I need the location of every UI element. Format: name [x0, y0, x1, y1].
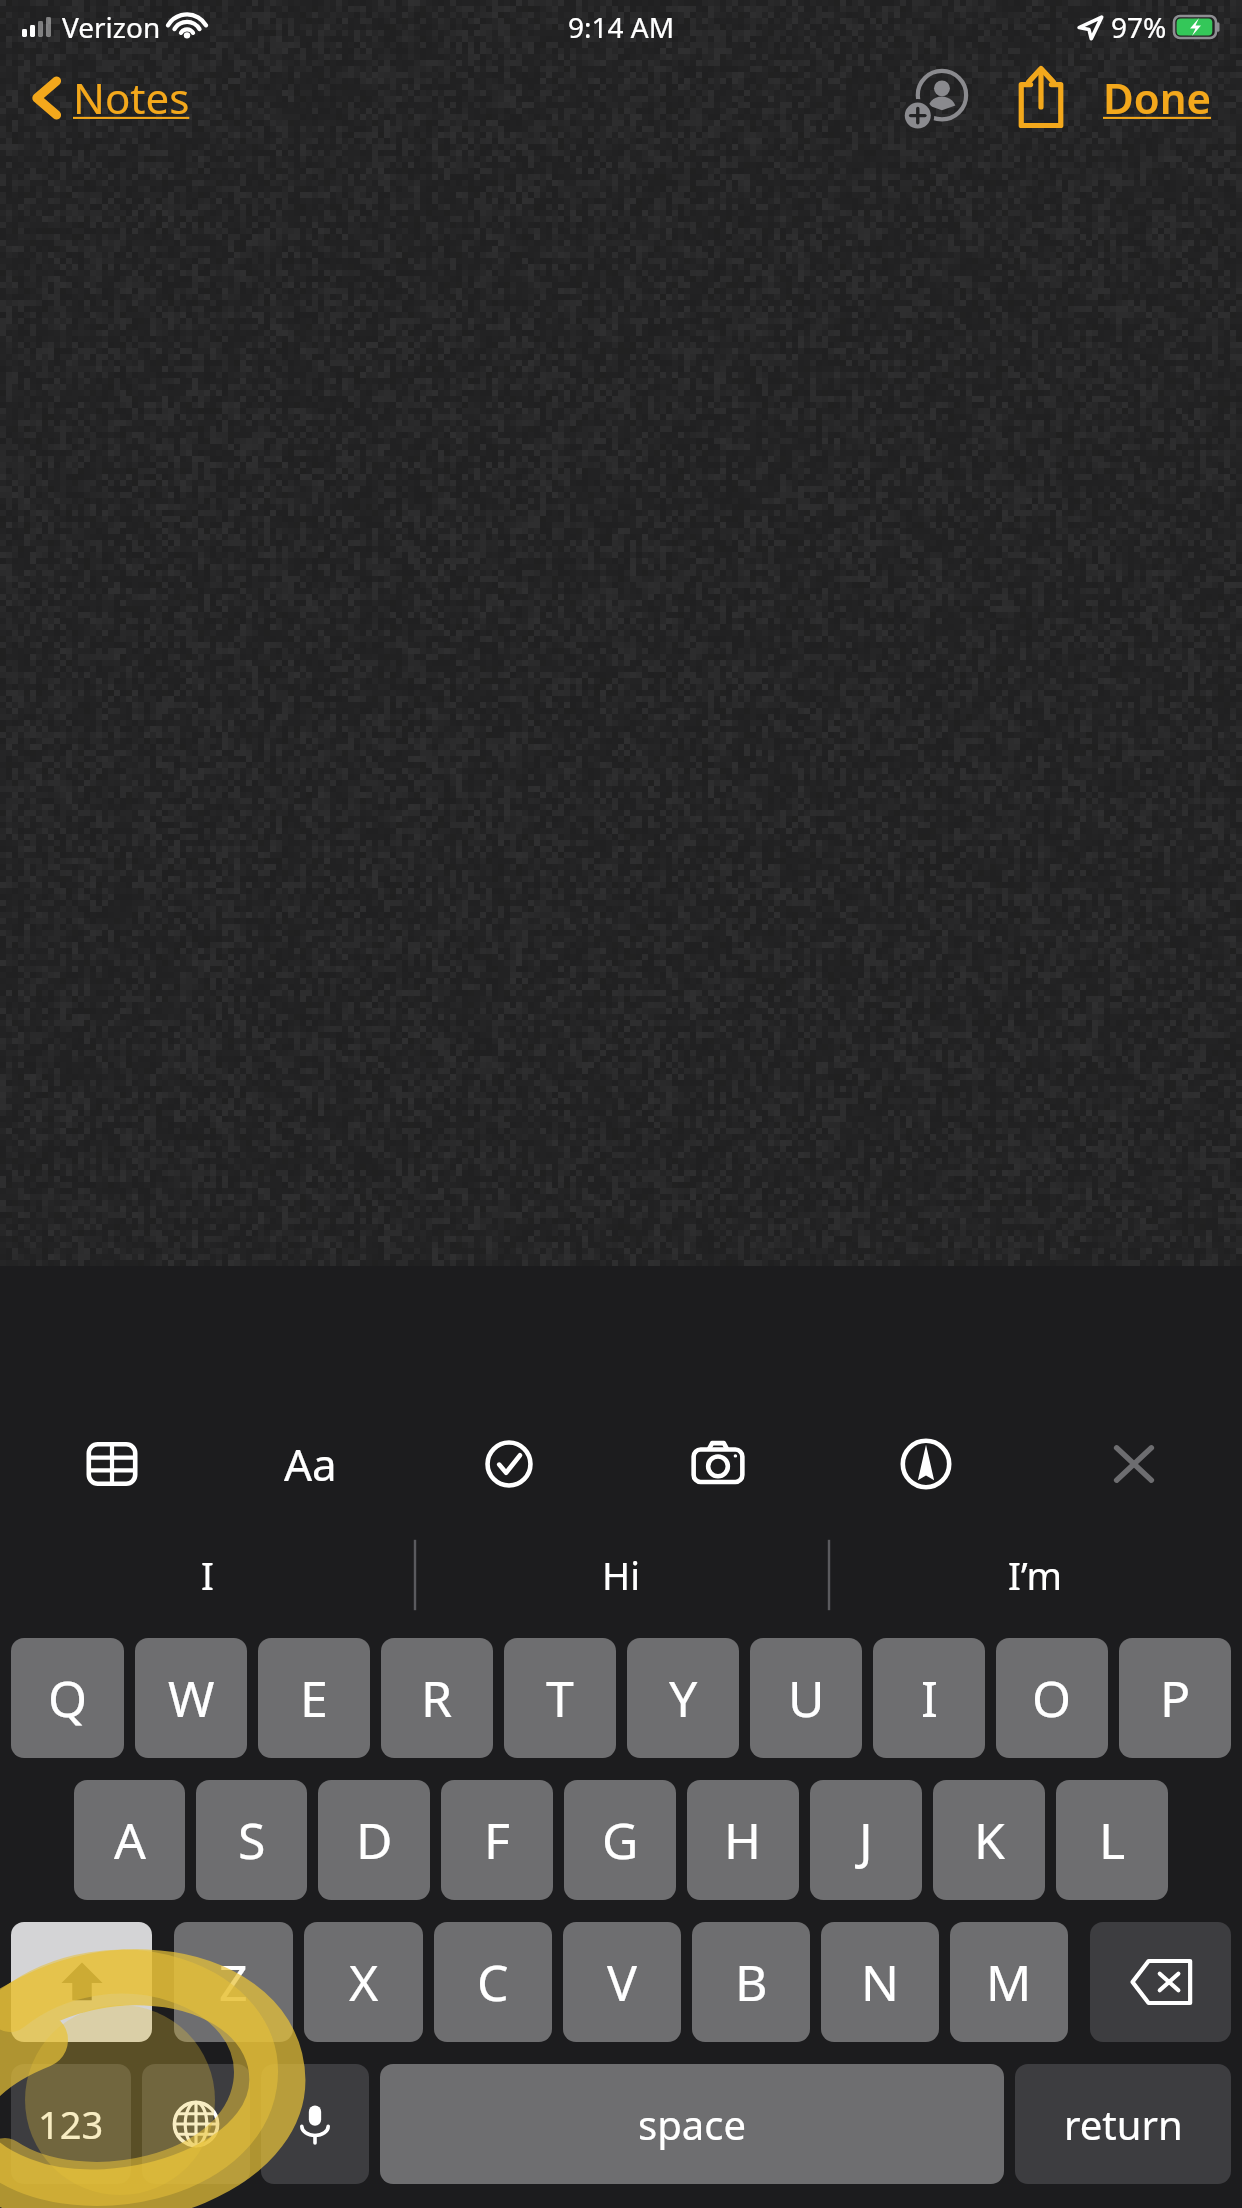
button[interactable]: H: [687, 1780, 799, 1900]
staticText: I’m: [1008, 1549, 1062, 1601]
staticText: C: [477, 1948, 509, 2016]
staticText: D: [356, 1806, 393, 1874]
staticText: B: [735, 1948, 768, 2016]
button[interactable]: K: [933, 1780, 1045, 1900]
button[interactable]: W: [135, 1638, 247, 1758]
button[interactable]: Switch Language: [142, 2064, 250, 2184]
staticText: Q: [48, 1664, 88, 1732]
staticText: W: [168, 1664, 215, 1732]
staticText: E: [300, 1664, 328, 1732]
button[interactable]: S: [196, 1780, 307, 1900]
button[interactable]: P: [1119, 1638, 1231, 1758]
button[interactable]: Close Keyboard: [1088, 1418, 1180, 1510]
button[interactable]: F: [441, 1780, 553, 1900]
staticText: Verizon: [62, 8, 161, 46]
button[interactable]: X: [304, 1922, 423, 2042]
button[interactable]: G: [564, 1780, 676, 1900]
button[interactable]: Y: [627, 1638, 739, 1758]
button[interactable]: Shift: [11, 1922, 152, 2042]
button[interactable]: return: [1015, 2064, 1231, 2184]
button[interactable]: N: [821, 1922, 939, 2042]
staticText: X: [349, 1948, 379, 2016]
staticText: G: [602, 1806, 639, 1874]
button[interactable]: L: [1056, 1780, 1168, 1900]
button[interactable]: M: [950, 1922, 1068, 2042]
staticText: A: [114, 1806, 146, 1874]
staticText: Y: [669, 1664, 698, 1732]
button[interactable]: A: [74, 1780, 185, 1900]
button[interactable]: O: [996, 1638, 1108, 1758]
button[interactable]: C: [434, 1922, 552, 2042]
button[interactable]: D: [318, 1780, 430, 1900]
staticText: M: [986, 1948, 1032, 2016]
button[interactable]: Z: [174, 1922, 293, 2042]
button[interactable]: Add People: [889, 54, 985, 140]
staticText: T: [546, 1664, 574, 1732]
staticText: V: [607, 1948, 637, 2016]
button[interactable]: R: [381, 1638, 493, 1758]
button[interactable]: Backspace: [1090, 1922, 1231, 2042]
staticText: I: [201, 1549, 214, 1601]
button[interactable]: J: [810, 1780, 922, 1900]
staticText: R: [421, 1664, 453, 1732]
staticText: Hi: [602, 1549, 640, 1601]
staticText: Aa: [284, 1434, 337, 1494]
button[interactable]: Numbers: [11, 2064, 131, 2184]
button[interactable]: Dictate: [261, 2064, 369, 2184]
staticText: S: [238, 1806, 266, 1874]
button[interactable]: V: [563, 1922, 681, 2042]
button[interactable]: Notes: [26, 63, 196, 132]
button[interactable]: Done: [1095, 61, 1220, 134]
button[interactable]: Share: [995, 54, 1087, 140]
button[interactable]: B: [692, 1922, 810, 2042]
staticText: J: [859, 1806, 873, 1874]
button[interactable]: Table: [66, 1418, 158, 1510]
button[interactable]: Checklist: [463, 1418, 555, 1510]
staticText: O: [1032, 1664, 1072, 1732]
staticText: 123: [38, 2098, 104, 2150]
staticText: 97%: [1111, 8, 1167, 46]
staticText: space: [638, 2097, 746, 2151]
staticText: Done: [1103, 69, 1212, 126]
button[interactable]: space: [380, 2064, 1004, 2184]
staticText: N: [861, 1948, 899, 2016]
staticText: P: [1160, 1664, 1191, 1732]
button[interactable]: I: [873, 1638, 985, 1758]
button[interactable]: Markup: [880, 1418, 972, 1510]
staticText: U: [788, 1664, 825, 1732]
button[interactable]: E: [258, 1638, 370, 1758]
button[interactable]: Aa: [274, 1424, 347, 1504]
button[interactable]: T: [504, 1638, 616, 1758]
staticText: L: [1099, 1806, 1126, 1874]
button[interactable]: I’m: [828, 1520, 1242, 1630]
button[interactable]: Camera: [672, 1418, 764, 1510]
button[interactable]: Q: [11, 1638, 124, 1758]
staticText: return: [1064, 2097, 1183, 2151]
staticText: H: [724, 1806, 762, 1874]
button[interactable]: I: [0, 1520, 414, 1630]
staticText: K: [974, 1806, 1005, 1874]
staticText: Notes: [73, 69, 190, 126]
staticText: F: [484, 1806, 510, 1874]
staticText: Z: [219, 1948, 248, 2016]
staticText: 9:14 AM: [568, 8, 675, 46]
button[interactable]: U: [750, 1638, 862, 1758]
staticText: I: [921, 1664, 938, 1732]
button[interactable]: Hi: [414, 1520, 828, 1630]
